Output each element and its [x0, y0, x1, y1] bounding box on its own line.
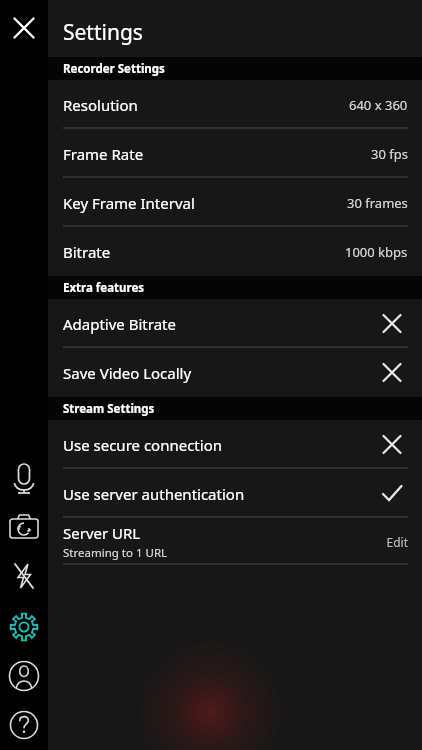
staticText: Bitrate [63, 242, 111, 262]
staticText: Extra features [63, 280, 145, 296]
staticText: Frame Rate [63, 144, 144, 164]
staticText: Resolution [63, 95, 138, 115]
button[interactable]: Key Frame Interval [48, 178, 422, 227]
button[interactable]: Adaptive Bitrate [48, 299, 422, 348]
button[interactable]: Server URL [48, 518, 422, 565]
staticText: Key Frame Interval [63, 193, 195, 213]
staticText: Edit [386, 534, 408, 550]
button[interactable]: Use secure connection [48, 420, 422, 469]
staticText: Use server authentication [63, 484, 245, 504]
staticText: 30 frames [347, 194, 408, 212]
button[interactable]: Save Video Locally [48, 348, 422, 397]
staticText: 640 x 360 [349, 96, 408, 114]
staticText: Recorder Settings [63, 61, 165, 77]
button[interactable]: Settings [0, 605, 48, 649]
staticText: 30 fps [371, 145, 408, 163]
staticText: Streaming to 1 URL [63, 545, 168, 561]
button[interactable]: Help [0, 703, 48, 747]
staticText: Save Video Locally [63, 363, 192, 383]
staticText: Use secure connection [63, 435, 222, 455]
staticText: Stream Settings [63, 401, 155, 417]
staticText: Adaptive Bitrate [63, 314, 176, 334]
button[interactable]: Switch camera [0, 505, 48, 549]
button[interactable]: Close [0, 0, 48, 57]
button[interactable]: Use server authentication [48, 469, 422, 518]
button[interactable]: Resolution [48, 80, 422, 129]
staticText: 1000 kbps [345, 243, 408, 261]
button[interactable]: Profile [0, 654, 48, 698]
button[interactable]: Flash off [0, 554, 48, 598]
button[interactable]: Microphone [0, 455, 48, 499]
staticText: Settings [63, 18, 143, 47]
button[interactable]: Frame Rate [48, 129, 422, 178]
button[interactable]: Bitrate [48, 227, 422, 276]
staticText: Server URL [63, 523, 141, 543]
